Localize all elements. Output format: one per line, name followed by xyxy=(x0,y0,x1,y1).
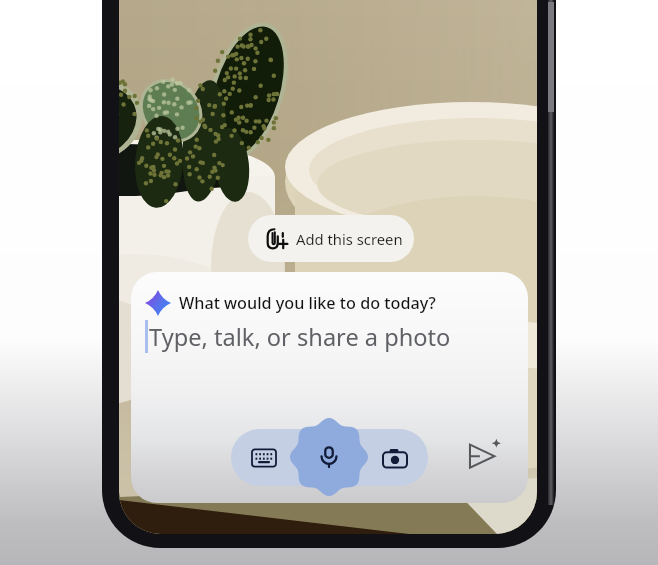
button[interactable]: Add this screen xyxy=(248,215,414,262)
button[interactable]: Voice input xyxy=(290,418,368,496)
button[interactable]: Send xyxy=(462,432,506,476)
button[interactable]: Keyboard xyxy=(231,429,297,486)
button[interactable]: Camera xyxy=(362,429,428,486)
staticText: Add this screen xyxy=(296,229,403,249)
staticText: Type, talk, or share a photo xyxy=(149,321,451,353)
staticText: What would you like to do today? xyxy=(179,292,436,314)
